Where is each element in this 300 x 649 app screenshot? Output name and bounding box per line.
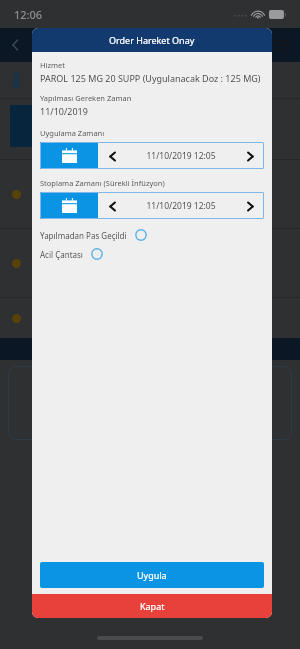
staticText: Uygulama Zamanı [40, 128, 105, 138]
staticText: Order Hareket Onay [109, 34, 195, 46]
button[interactable]: Önceki [104, 148, 120, 164]
button[interactable]: Takvim [40, 192, 264, 219]
staticText: PAROL 125 MG 20 SUPP (Uygulanacak Doz : … [40, 72, 261, 84]
button[interactable]: Takvim [40, 142, 98, 169]
button[interactable]: Sonraki [242, 148, 258, 164]
button[interactable]: Acil Çantası [40, 248, 264, 260]
button[interactable]: Uygula [40, 562, 264, 588]
button[interactable]: Kapat [32, 594, 272, 618]
staticText: Kapat [140, 600, 165, 612]
staticText: Uygula [137, 569, 167, 581]
button[interactable]: Sonraki [242, 198, 258, 214]
staticText: Yapılması Gereken Zaman [40, 93, 132, 103]
staticText: Hizmet [40, 60, 65, 70]
button[interactable]: Yapılmadan Pas Geçildi [40, 229, 264, 241]
button[interactable]: Takvim [40, 142, 264, 169]
staticText: 11/10/2019 12:05 [146, 150, 216, 162]
staticText: Acil Çantası [40, 249, 83, 260]
staticText: 11/10/2019 12:05 [146, 200, 216, 212]
button[interactable]: Önceki [104, 198, 120, 214]
staticText: Stoplama Zamanı (Sürekli İnfüzyon) [40, 178, 165, 188]
staticText: Yapılmadan Pas Geçildi [40, 230, 127, 241]
button[interactable]: Takvim [40, 192, 98, 219]
staticText: 12:06 [14, 7, 43, 22]
staticText: 11/10/2019 [40, 105, 88, 117]
